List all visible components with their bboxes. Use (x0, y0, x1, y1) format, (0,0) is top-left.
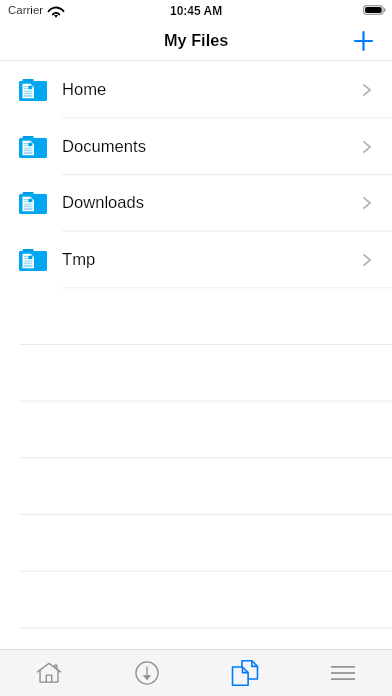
button[interactable]: Home (0, 61, 392, 118)
button[interactable]: Tmp (0, 231, 392, 288)
staticText: Home (62, 80, 107, 99)
button[interactable]: Menu (294, 650, 392, 696)
button[interactable]: Documents (0, 118, 392, 175)
staticText: Carrier (8, 4, 44, 17)
button[interactable]: Downloads (0, 174, 392, 231)
staticText: Documents (62, 137, 146, 156)
button[interactable]: Add (344, 20, 392, 61)
staticText: 10:45 AM (170, 4, 223, 17)
staticText: My Files (164, 31, 229, 49)
button[interactable]: Files (196, 650, 294, 696)
staticText: Downloads (62, 193, 145, 212)
button[interactable]: Home (0, 650, 98, 696)
button[interactable]: Downloads (98, 650, 196, 696)
staticText: Tmp (62, 250, 96, 269)
